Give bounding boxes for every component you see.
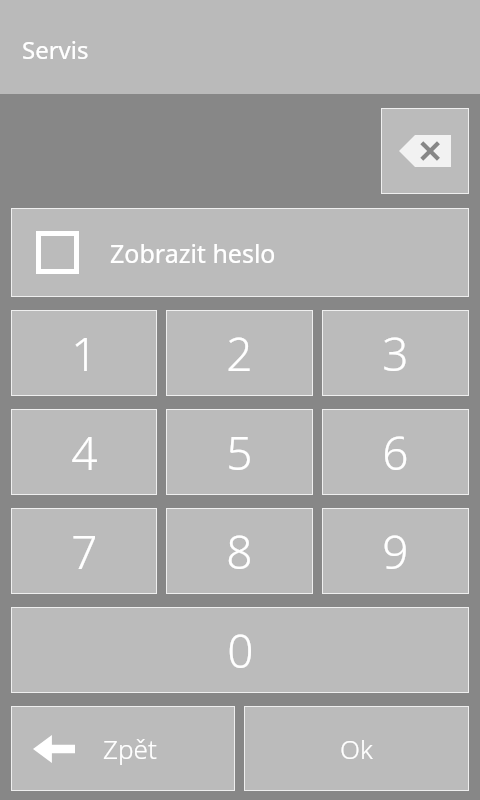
staticText: 9 — [382, 520, 409, 583]
staticText: 2 — [226, 322, 253, 385]
button[interactable]: 7 — [11, 508, 157, 594]
button[interactable]: 4 — [11, 409, 157, 495]
staticText: 0 — [227, 619, 254, 682]
button[interactable]: 6 — [322, 409, 469, 495]
staticText: Zpět — [103, 731, 157, 766]
staticText: 3 — [382, 322, 409, 385]
button[interactable]: Zpět — [11, 706, 235, 791]
staticText: 8 — [226, 520, 253, 583]
button[interactable]: Backspace — [381, 108, 469, 194]
button[interactable]: Ok — [244, 706, 469, 791]
button[interactable]: 5 — [166, 409, 313, 495]
staticText: 6 — [382, 421, 409, 484]
button[interactable]: Zobrazit heslo — [11, 208, 469, 297]
button[interactable]: 8 — [166, 508, 313, 594]
button[interactable]: 1 — [11, 310, 157, 396]
staticText: 4 — [71, 421, 98, 484]
staticText: Servis — [22, 33, 89, 66]
staticText: 7 — [71, 520, 98, 583]
button[interactable]: 0 — [11, 607, 469, 693]
button[interactable]: 9 — [322, 508, 469, 594]
staticText: 1 — [71, 322, 98, 385]
button[interactable]: 2 — [166, 310, 313, 396]
button[interactable]: 3 — [322, 310, 469, 396]
staticText: Ok — [340, 731, 373, 766]
staticText: Zobrazit heslo — [110, 236, 276, 270]
staticText: 5 — [226, 421, 253, 484]
